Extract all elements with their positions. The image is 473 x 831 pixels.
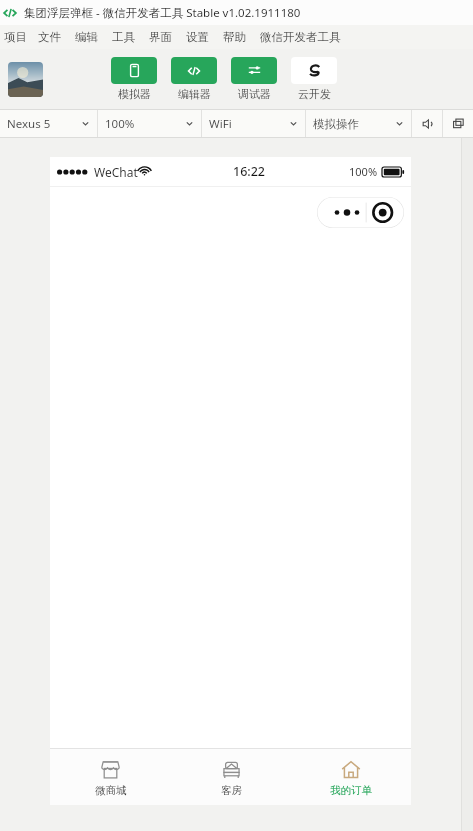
staticText: 编辑器 — [178, 87, 211, 101]
staticText: 模拟器 — [118, 87, 151, 101]
button[interactable]: 调试器 — [231, 57, 277, 101]
staticText: 集团浮层弹框 - 微信开发者工具 Stable v1.02.1911180 — [24, 5, 301, 21]
staticText: 云开发 — [298, 87, 331, 101]
staticText: 界面 — [149, 30, 172, 44]
button[interactable]: 云开发 — [291, 57, 337, 101]
staticText: 微商城 — [95, 784, 127, 797]
button[interactable]: 编辑 — [68, 25, 105, 49]
staticText: 我的订单 — [330, 784, 372, 797]
button[interactable]: 文件 — [31, 25, 68, 49]
button[interactable]: Display — [443, 110, 473, 137]
staticText: WeChat — [94, 164, 138, 180]
staticText: 文件 — [38, 30, 61, 44]
staticText: 编辑 — [75, 30, 98, 44]
staticText: 工具 — [112, 30, 135, 44]
button[interactable]: Project — [8, 62, 43, 97]
button[interactable]: 编辑器 — [171, 57, 217, 101]
button[interactable]: 我的订单 — [291, 749, 411, 805]
button[interactable]: Menu and close — [317, 197, 404, 228]
button[interactable]: 客房 — [171, 749, 291, 805]
button[interactable]: 设置 — [179, 25, 216, 49]
button[interactable]: 工具 — [105, 25, 142, 49]
staticText: 100% — [349, 164, 378, 179]
staticText: 项目 — [4, 30, 27, 44]
button[interactable]: Mute — [412, 110, 442, 137]
button[interactable]: 100% — [98, 110, 201, 137]
button[interactable]: WiFi — [202, 110, 305, 137]
button[interactable]: 模拟器 — [111, 57, 157, 101]
staticText: 客房 — [221, 784, 242, 797]
staticText: 帮助 — [223, 30, 246, 44]
button[interactable]: 帮助 — [216, 25, 253, 49]
button[interactable]: Nexus 5 — [0, 110, 97, 137]
button[interactable]: 模拟操作 — [306, 110, 411, 137]
staticText: WiFi — [209, 116, 232, 132]
button[interactable]: 项目 — [0, 25, 31, 49]
staticText: 100% — [105, 116, 135, 132]
staticText: 设置 — [186, 30, 209, 44]
staticText: 16:22 — [233, 163, 266, 180]
staticText: Nexus 5 — [7, 116, 51, 132]
button[interactable]: 微信开发者工具 — [253, 25, 348, 49]
staticText: 调试器 — [238, 87, 271, 101]
staticText: 模拟操作 — [313, 117, 359, 131]
staticText: 微信开发者工具 — [260, 30, 341, 44]
button[interactable]: 界面 — [142, 25, 179, 49]
button[interactable]: 微商城 — [50, 749, 171, 805]
